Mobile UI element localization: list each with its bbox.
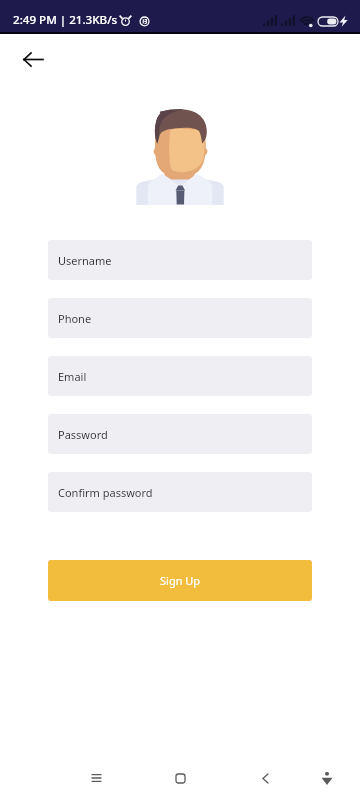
staticText: Sign Up <box>160 573 201 588</box>
staticText: Username <box>58 253 112 268</box>
button[interactable]: Back <box>12 43 54 75</box>
button[interactable]: Recent apps <box>80 756 112 800</box>
button[interactable]: Password <box>48 414 312 454</box>
staticText: Phone <box>58 311 92 326</box>
button[interactable]: Home <box>164 756 196 800</box>
staticText: Password <box>58 427 108 442</box>
button[interactable]: Phone <box>48 298 312 338</box>
button[interactable]: Sign Up <box>48 560 312 601</box>
button[interactable]: Back <box>249 756 281 800</box>
staticText: Confirm password <box>58 485 153 500</box>
button[interactable]: Email <box>48 356 312 396</box>
staticText: 2:49 PM | 21.3KB/s <box>13 12 118 28</box>
button[interactable]: Username <box>48 240 312 280</box>
button[interactable]: Hide keyboard <box>311 756 343 800</box>
button[interactable]: Confirm password <box>48 472 312 512</box>
staticText: Email <box>58 369 87 384</box>
